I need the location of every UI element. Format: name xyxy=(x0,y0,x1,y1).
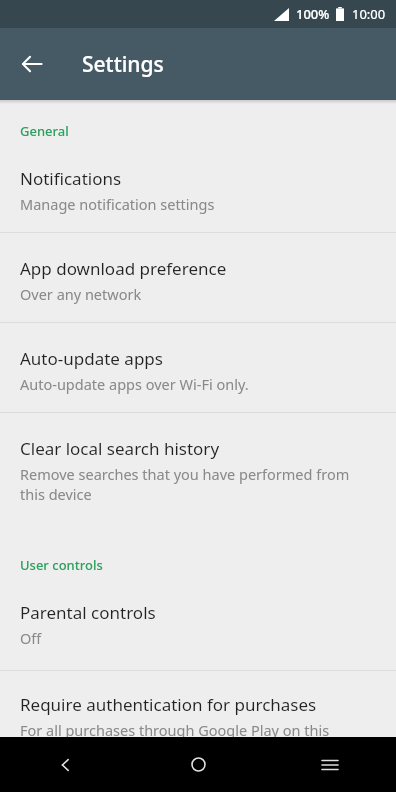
staticText: Auto-update apps over Wi-Fi only. xyxy=(20,374,249,394)
staticText: Notifications xyxy=(20,167,122,190)
staticText: General xyxy=(20,122,69,140)
button[interactable]: Notifications xyxy=(0,140,396,232)
button[interactable]: Clear local search history xyxy=(0,413,396,524)
button[interactable]: Recent apps xyxy=(264,737,396,792)
button[interactable]: App download preference xyxy=(0,233,396,322)
staticText: Parental controls xyxy=(20,601,156,624)
staticText: Manage notification settings xyxy=(20,194,215,214)
staticText: Clear local search history xyxy=(20,437,220,460)
button[interactable]: Home xyxy=(132,737,264,792)
staticText: Remove searches that you have performed … xyxy=(20,464,356,504)
staticText: Auto-update apps xyxy=(20,347,163,370)
button[interactable]: Back xyxy=(8,40,56,88)
staticText: 10:00 xyxy=(352,5,386,23)
staticText: Settings xyxy=(82,50,164,79)
staticText: 100% xyxy=(296,5,330,23)
staticText: Over any network xyxy=(20,284,142,304)
staticText: App download preference xyxy=(20,257,227,280)
button[interactable]: Require authentication for purchases xyxy=(0,671,396,737)
button[interactable]: Back xyxy=(0,737,132,792)
staticText: For all purchases through Google Play on… xyxy=(20,720,356,737)
button[interactable]: Parental controls xyxy=(0,574,396,670)
staticText: User controls xyxy=(20,556,103,574)
button[interactable]: Auto-update apps xyxy=(0,323,396,412)
staticText: Off xyxy=(20,628,42,648)
staticText: Require authentication for purchases xyxy=(20,693,317,716)
